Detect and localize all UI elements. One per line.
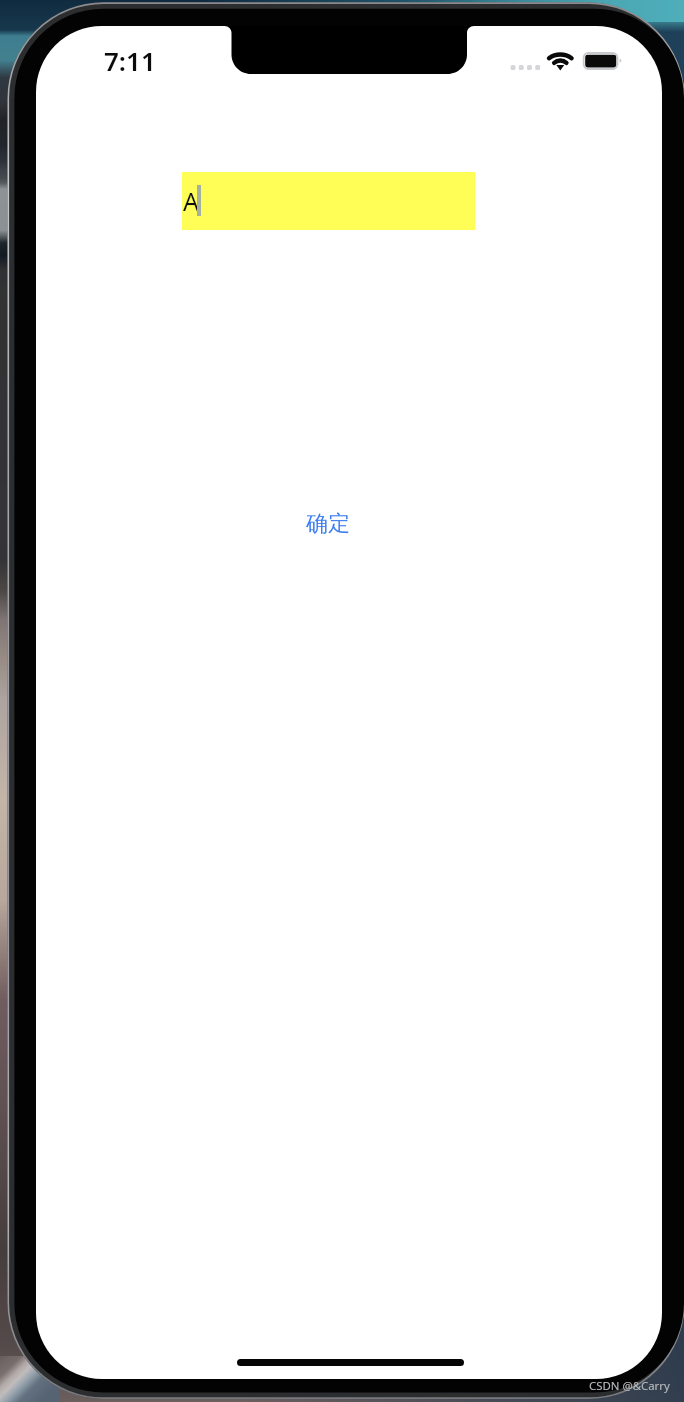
staticText: A	[183, 184, 199, 218]
staticText: 确定	[306, 510, 350, 538]
button[interactable]: 确定	[288, 504, 368, 544]
staticText: 7:11	[104, 43, 156, 75]
button[interactable]: A	[182, 172, 475, 230]
staticText: CSDN @&Carry	[589, 1378, 670, 1394]
other: Status icons	[505, 45, 629, 77]
